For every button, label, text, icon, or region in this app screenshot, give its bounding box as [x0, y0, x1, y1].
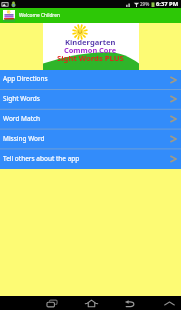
staticText: 6:37 PM	[156, 0, 179, 8]
staticText: Sight Words	[3, 94, 40, 103]
staticText: App Directions	[3, 74, 48, 83]
button[interactable]: Recents	[37, 296, 67, 310]
staticText: Welcome Children	[19, 12, 60, 19]
button[interactable]: App Directions	[0, 70, 181, 89]
staticText: Word Match	[3, 114, 41, 123]
button[interactable]: Sight Words	[0, 89, 181, 109]
staticText: Missing Word	[3, 134, 45, 143]
button[interactable]: Show menu	[159, 296, 179, 310]
staticText: Kindergarten	[65, 37, 116, 47]
staticText: Sight Words PLUS	[57, 53, 124, 63]
button[interactable]: Tell others about the app	[0, 149, 181, 169]
staticText: Common Core	[64, 45, 117, 55]
staticText: 29%	[140, 1, 150, 7]
staticText: Tell others about the app	[3, 154, 80, 163]
button[interactable]: Missing Word	[0, 129, 181, 149]
button[interactable]: Home	[76, 296, 106, 310]
button[interactable]: Back	[116, 296, 142, 310]
button[interactable]: Word Match	[0, 109, 181, 129]
